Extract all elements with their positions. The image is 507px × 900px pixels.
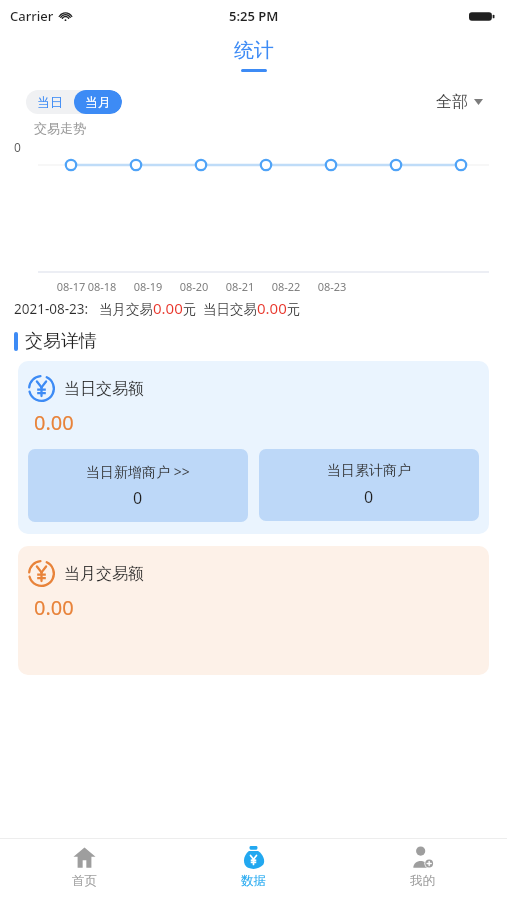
staticText: 2021-08-23:	[14, 300, 89, 318]
button[interactable]: 当日新增商户 >>	[28, 449, 248, 522]
staticText: 当月	[85, 94, 111, 110]
staticText: 08-21	[217, 279, 263, 294]
staticText: 当日交易额	[64, 379, 144, 399]
button[interactable]: 数据	[169, 839, 338, 900]
staticText: 08-17	[48, 279, 94, 294]
staticText: 0	[14, 139, 21, 155]
staticText: 当日新增商户 >>	[86, 462, 190, 481]
staticText: 0	[364, 486, 374, 508]
staticText: 交易详情	[25, 330, 97, 353]
staticText: 08-20	[171, 279, 217, 294]
staticText: 0.00	[34, 594, 74, 621]
staticText: 0.00	[34, 409, 74, 436]
button[interactable]: 当月交易额	[18, 546, 489, 675]
button[interactable]: 当月	[74, 90, 122, 114]
staticText: 08-22	[263, 279, 309, 294]
staticText: 08-18	[79, 279, 125, 294]
button[interactable]: 我的	[338, 839, 507, 900]
staticText: 当日交易	[203, 301, 257, 318]
other: 首页	[73, 846, 96, 869]
staticText: 0.00	[257, 298, 287, 318]
staticText: 当月交易	[99, 301, 153, 318]
staticText: 全部	[436, 92, 468, 112]
staticText: 0	[133, 487, 143, 509]
button[interactable]: 当日	[26, 90, 74, 114]
staticText: 统计	[234, 38, 274, 63]
staticText: 首页	[72, 873, 97, 889]
button[interactable]: 全部	[432, 88, 487, 116]
staticText: Carrier	[10, 7, 54, 25]
staticText: 元	[287, 301, 301, 318]
other: 我的	[411, 846, 434, 869]
staticText: 当月交易额	[64, 564, 144, 584]
staticText: 5:25 PM	[229, 7, 279, 25]
staticText: 元	[183, 301, 197, 318]
staticText: 当日	[37, 94, 63, 110]
staticText: 当日累计商户	[327, 462, 411, 480]
staticText: 08-19	[125, 279, 171, 294]
staticText: 交易走势	[34, 120, 86, 136]
staticText: 08-23	[309, 279, 355, 294]
staticText: 0.00	[153, 298, 183, 318]
other: 数据	[242, 846, 265, 869]
button[interactable]: 当日交易额	[18, 361, 489, 534]
button[interactable]: 当日累计商户	[259, 449, 479, 521]
button[interactable]: 首页	[0, 839, 169, 900]
staticText: 数据	[241, 873, 266, 889]
staticText: 我的	[410, 873, 435, 889]
